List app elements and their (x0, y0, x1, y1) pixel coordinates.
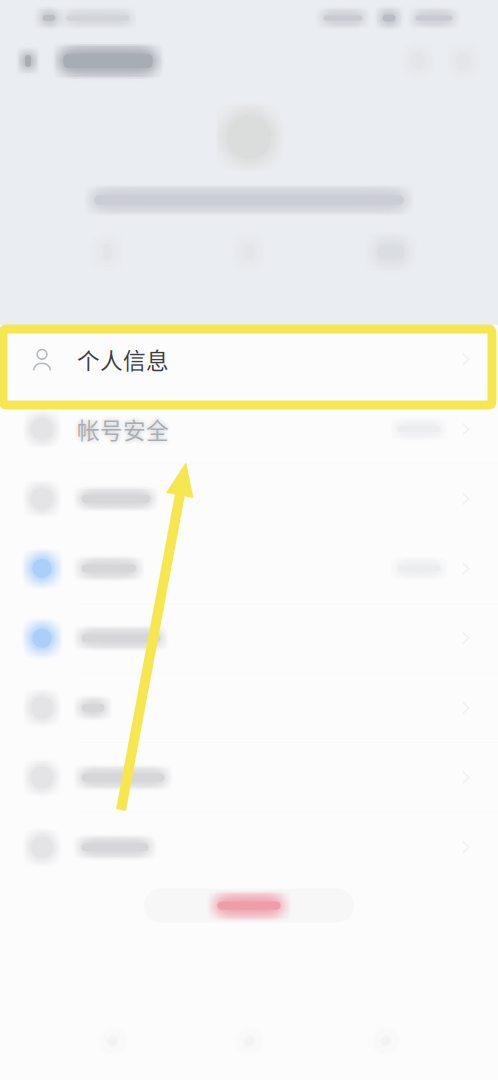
button[interactable] (0, 534, 498, 603)
staticText: 个人信息 (77, 343, 169, 376)
button[interactable] (144, 889, 354, 923)
button[interactable] (0, 673, 498, 742)
button[interactable]: 个人信息 (0, 325, 498, 394)
button[interactable]: Back (11, 37, 45, 85)
button[interactable]: Wallet (320, 234, 462, 270)
button[interactable]: Profile photo (221, 109, 277, 165)
staticText: 帐号安全 (77, 413, 169, 445)
button[interactable] (0, 604, 498, 672)
button[interactable] (0, 743, 498, 812)
button[interactable] (0, 464, 498, 533)
button[interactable]: 帐号安全 (0, 395, 498, 463)
button[interactable] (0, 813, 498, 882)
